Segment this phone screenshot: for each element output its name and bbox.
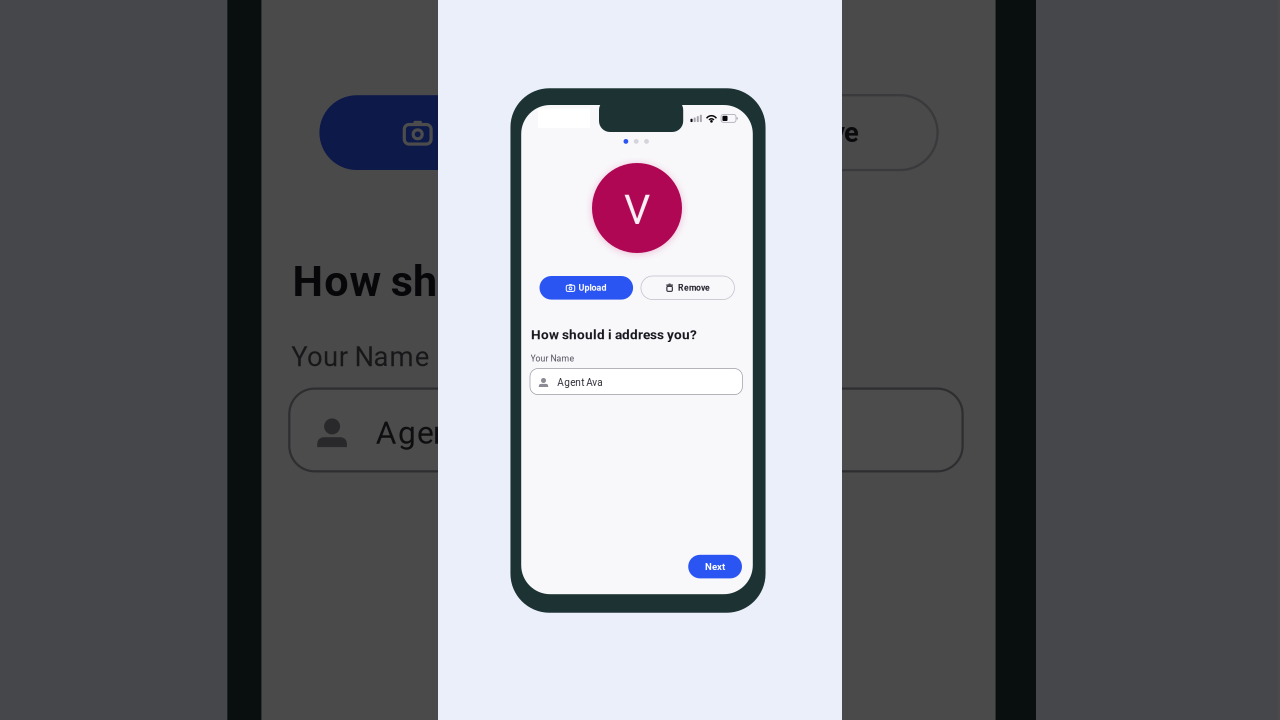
staticText: Next bbox=[703, 562, 723, 574]
staticText: How should i address you? bbox=[529, 328, 695, 344]
staticText: Upload bbox=[578, 283, 606, 293]
staticText: V bbox=[624, 185, 650, 234]
staticText: Next bbox=[705, 561, 725, 572]
button[interactable]: Upload bbox=[539, 276, 633, 300]
staticText: Your Name bbox=[531, 353, 575, 364]
staticText: V bbox=[622, 187, 648, 235]
staticText: How should i address you? bbox=[531, 327, 697, 343]
button[interactable]: Agent Ava bbox=[528, 370, 740, 396]
staticText: Remove bbox=[676, 284, 708, 294]
staticText: Remove bbox=[678, 283, 710, 293]
button[interactable]: Upload bbox=[537, 277, 631, 301]
staticText: Upload bbox=[576, 284, 604, 295]
button[interactable]: Remove bbox=[639, 277, 732, 301]
staticText: Agent Ava bbox=[557, 377, 602, 388]
button[interactable]: Agent Ava bbox=[530, 369, 742, 395]
staticText: Your Name bbox=[529, 355, 573, 365]
staticText: Agent Ava bbox=[555, 378, 600, 390]
button[interactable]: Next bbox=[686, 556, 740, 580]
button[interactable]: Next bbox=[688, 555, 742, 578]
button[interactable]: Remove bbox=[641, 276, 734, 300]
